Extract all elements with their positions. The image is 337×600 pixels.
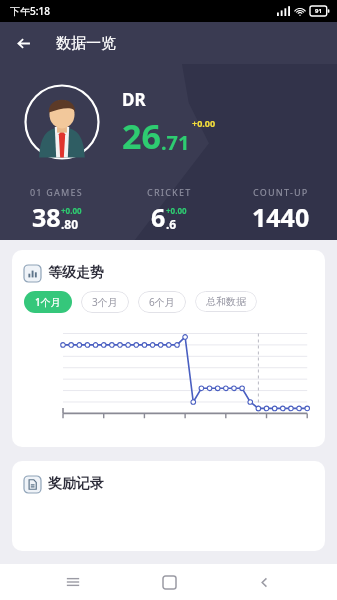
staticText: 3个月 xyxy=(92,295,118,309)
button[interactable]: COUNT-UP xyxy=(225,186,337,234)
button[interactable]: 3个月 xyxy=(81,291,129,313)
staticText: 1440 xyxy=(252,200,310,234)
staticText: 91 xyxy=(315,7,322,15)
staticText: +0.00 xyxy=(166,205,187,216)
staticText: .80 xyxy=(61,216,79,232)
staticText: 6 xyxy=(151,200,166,234)
staticText: +0.00 xyxy=(61,205,82,216)
button[interactable]: 奖励记录 xyxy=(12,461,325,551)
button[interactable]: CRICKET xyxy=(113,186,225,234)
staticText: 等级走势 xyxy=(48,264,104,282)
staticText: 1个月 xyxy=(35,295,61,309)
staticText: 总和数据 xyxy=(206,295,246,308)
staticText: COUNT-UP xyxy=(253,186,309,198)
staticText: 奖励记录 xyxy=(48,475,104,493)
staticText: DR xyxy=(122,88,146,111)
staticText: +0.00 xyxy=(192,117,216,129)
staticText: .71 xyxy=(161,129,190,156)
button[interactable]: 01 GAMES xyxy=(0,186,113,234)
staticText: .6 xyxy=(166,216,177,232)
button[interactable]: 6个月 xyxy=(138,291,186,313)
button[interactable]: Recents xyxy=(51,564,95,600)
staticText: 6个月 xyxy=(149,295,175,309)
staticText: 38 xyxy=(32,200,61,234)
button[interactable]: 等级走势 xyxy=(12,250,325,447)
button[interactable]: Back xyxy=(242,564,286,600)
button[interactable]: 1个月 xyxy=(24,291,72,313)
button[interactable]: Home xyxy=(147,564,191,600)
staticText: 数据一览 xyxy=(56,34,116,53)
staticText: 01 GAMES xyxy=(30,186,83,198)
staticText: 下午5:18 xyxy=(10,4,50,18)
button[interactable]: 总和数据 xyxy=(195,291,257,312)
button[interactable]: Back xyxy=(10,29,38,57)
staticText: 26 xyxy=(122,113,161,159)
staticText: CRICKET xyxy=(147,186,192,198)
